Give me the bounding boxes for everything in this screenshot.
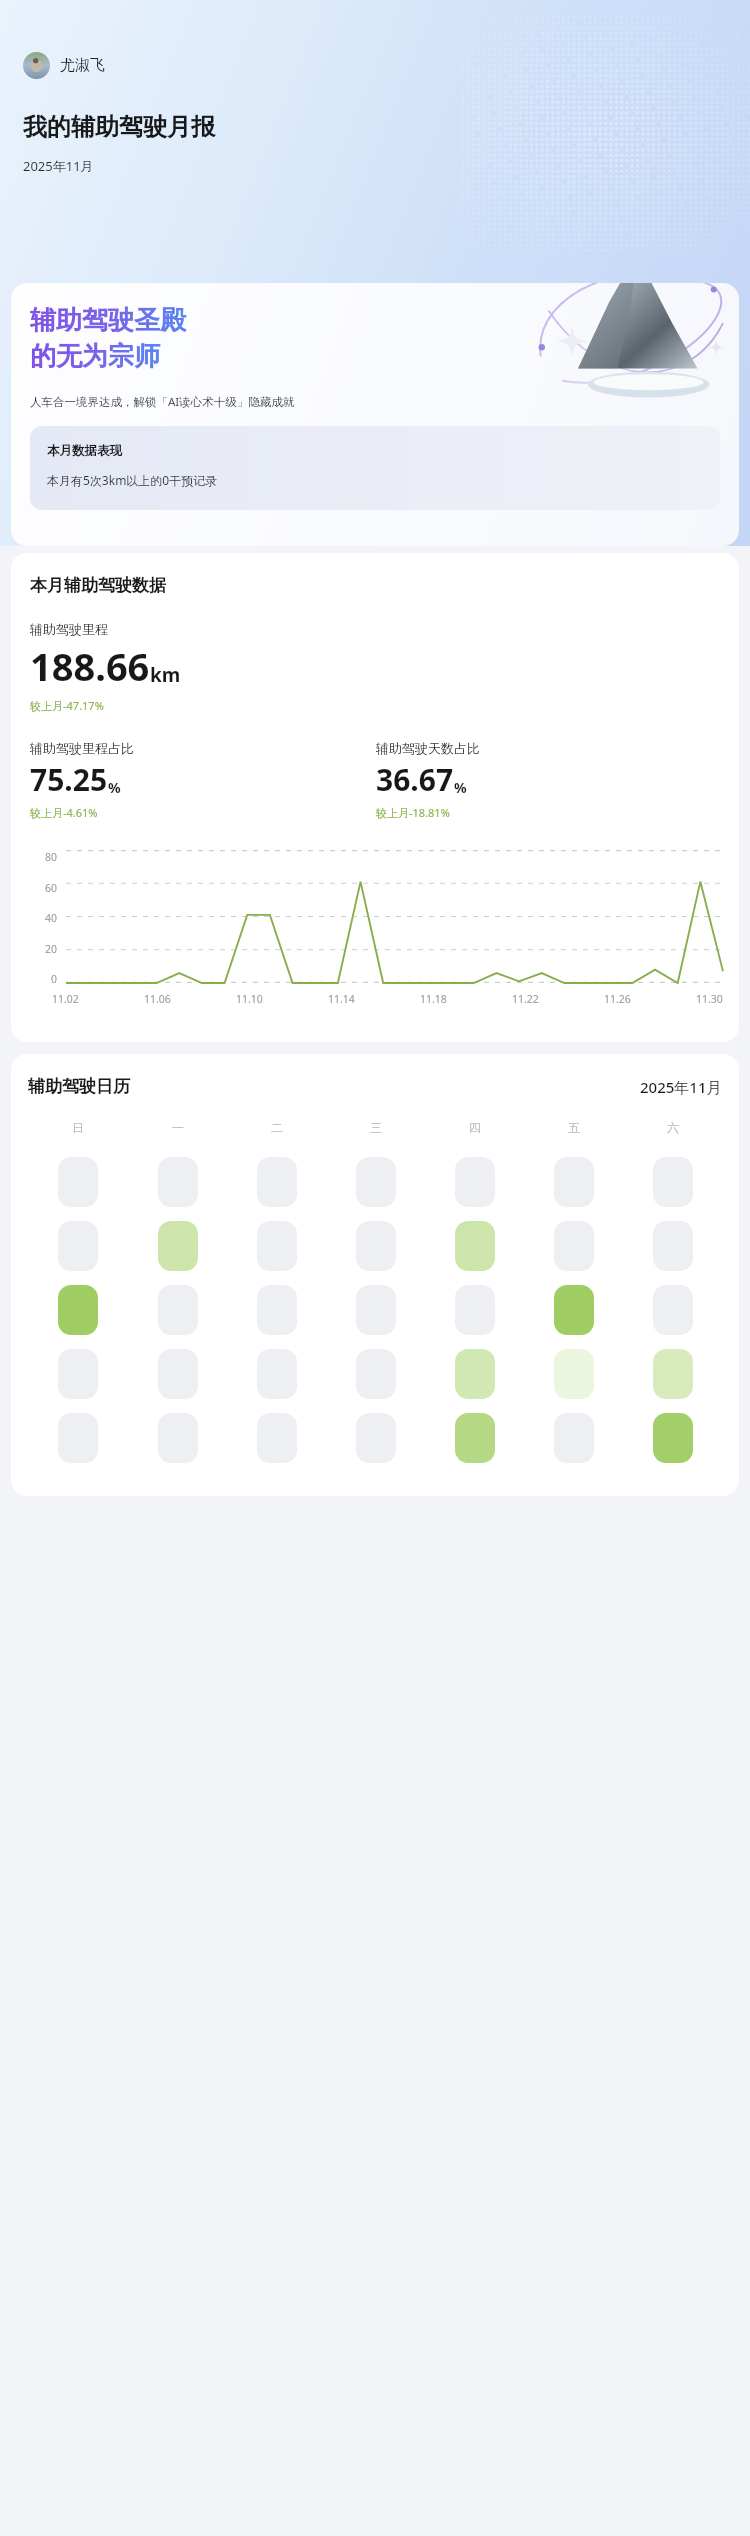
button[interactable] (356, 1157, 396, 1207)
staticText: 本月辅助驾驶数据 (30, 575, 166, 596)
staticText: 辅助驾驶天数占比 (376, 740, 480, 756)
button[interactable] (158, 1349, 198, 1399)
button[interactable] (455, 1413, 495, 1463)
staticText: 辅助驾驶圣殿 (30, 304, 186, 337)
button[interactable] (455, 1285, 495, 1335)
button[interactable] (653, 1221, 693, 1271)
staticText: 尤淑飞 (60, 56, 105, 75)
staticText: 一 (172, 1120, 184, 1135)
staticText: 五 (568, 1120, 580, 1135)
staticText: 本月数据表现 (47, 443, 122, 459)
staticText: 我的辅助驾驶月报 (23, 112, 215, 142)
staticText: 辅助驾驶里程 (30, 621, 108, 637)
staticText: 辅助驾驶日历 (28, 1076, 130, 1097)
staticText: 本月有5次3km以上的0干预记录 (47, 472, 218, 488)
button[interactable] (554, 1285, 594, 1335)
staticText: 20 (45, 942, 58, 953)
button[interactable] (257, 1349, 297, 1399)
button[interactable] (158, 1157, 198, 1207)
button[interactable] (455, 1221, 495, 1271)
staticText: 2025年11月 (23, 157, 94, 175)
button[interactable] (158, 1285, 198, 1335)
staticText: % (108, 778, 121, 797)
button[interactable] (554, 1221, 594, 1271)
staticText: 辅助驾驶里程占比 (30, 740, 134, 756)
button[interactable] (356, 1349, 396, 1399)
button[interactable] (58, 1157, 98, 1207)
staticText: 2025年11月 (640, 1077, 722, 1097)
staticText: 三 (370, 1120, 382, 1135)
button[interactable]: 尤淑飞 (20, 49, 108, 82)
staticText: 11.10 (236, 992, 263, 1006)
staticText: 11.06 (144, 992, 171, 1006)
staticText: 六 (667, 1120, 679, 1135)
staticText: 188.66 (30, 640, 150, 692)
button[interactable] (58, 1413, 98, 1463)
staticText: 40 (45, 911, 58, 922)
button[interactable]: 本月辅助驾驶数据 (11, 553, 739, 1042)
staticText: 较上月-18.81% (376, 805, 450, 820)
button[interactable] (653, 1349, 693, 1399)
button[interactable] (356, 1285, 396, 1335)
staticText: 的无为宗师 (30, 340, 160, 373)
staticText: 60 (45, 881, 58, 892)
staticText: % (454, 778, 467, 797)
button[interactable]: 成就插画 (11, 283, 739, 546)
staticText: 四 (469, 1120, 481, 1135)
button[interactable] (455, 1157, 495, 1207)
staticText: 11.30 (696, 992, 723, 1006)
button[interactable] (257, 1285, 297, 1335)
staticText: 75.25 (30, 759, 108, 800)
button[interactable] (158, 1221, 198, 1271)
staticText: 11.14 (328, 992, 355, 1006)
button[interactable] (554, 1349, 594, 1399)
staticText: 较上月-47.17% (30, 698, 104, 713)
button[interactable] (257, 1221, 297, 1271)
button[interactable] (356, 1221, 396, 1271)
button[interactable] (58, 1285, 98, 1335)
button[interactable] (455, 1349, 495, 1399)
button[interactable] (58, 1349, 98, 1399)
staticText: 11.22 (512, 992, 539, 1006)
button[interactable] (653, 1157, 693, 1207)
staticText: 11.26 (604, 992, 631, 1006)
button[interactable] (58, 1221, 98, 1271)
button[interactable] (653, 1413, 693, 1463)
staticText: 36.67 (376, 759, 454, 800)
staticText: 80 (45, 850, 58, 861)
button[interactable] (257, 1157, 297, 1207)
button[interactable] (257, 1413, 297, 1463)
button[interactable] (653, 1285, 693, 1335)
staticText: 11.18 (420, 992, 447, 1006)
staticText: 日 (72, 1120, 84, 1135)
staticText: 人车合一境界达成，解锁「AI读心术十级」隐藏成就 (30, 394, 295, 410)
staticText: 较上月-4.61% (30, 805, 98, 820)
button[interactable] (554, 1157, 594, 1207)
button[interactable] (158, 1413, 198, 1463)
staticText: 11.02 (52, 992, 79, 1006)
staticText: 二 (271, 1120, 283, 1135)
other: 成就插画 (531, 283, 727, 399)
button[interactable]: 本月数据表现 (30, 426, 720, 510)
button[interactable] (554, 1413, 594, 1463)
button[interactable] (356, 1413, 396, 1463)
staticText: km (150, 662, 181, 688)
staticText: 0 (51, 972, 58, 983)
button[interactable]: 辅助驾驶日历 (11, 1054, 739, 1496)
